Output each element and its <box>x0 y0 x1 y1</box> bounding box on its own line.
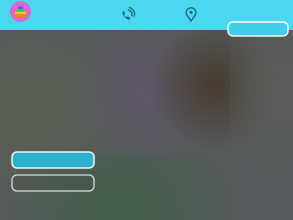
button[interactable]: Location <box>183 6 199 24</box>
button[interactable]: Status <box>228 22 288 36</box>
button[interactable]: Call <box>118 6 136 24</box>
button[interactable]: Primary action <box>12 152 94 168</box>
button[interactable]: Secondary action <box>12 175 94 191</box>
